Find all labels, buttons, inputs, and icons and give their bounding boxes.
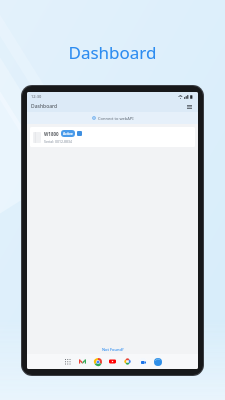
button[interactable]: Details [77,131,82,136]
staticText: Serial: 0012-8834 [44,139,73,144]
button[interactable]: Chrome [92,356,103,367]
button[interactable]: Connect to webAPI [27,112,198,124]
button[interactable]: All apps [62,356,73,367]
button[interactable]: W1800 [30,127,195,147]
button[interactable]: Assistant [152,356,163,367]
staticText: Dashboard [68,41,157,64]
staticText: Connect to webAPI [98,116,134,121]
button[interactable]: Not Found? [102,347,124,352]
button[interactable]: Gmail [77,356,88,367]
staticText: 12:30 [31,94,42,99]
button[interactable]: Meet [137,356,148,367]
staticText: Dashboard [31,103,58,110]
button[interactable]: Menu [185,102,194,111]
button[interactable]: Photos [122,356,133,367]
button[interactable]: YouTube [107,356,118,367]
staticText: W1800 [44,131,59,137]
staticText: Active [63,131,73,136]
